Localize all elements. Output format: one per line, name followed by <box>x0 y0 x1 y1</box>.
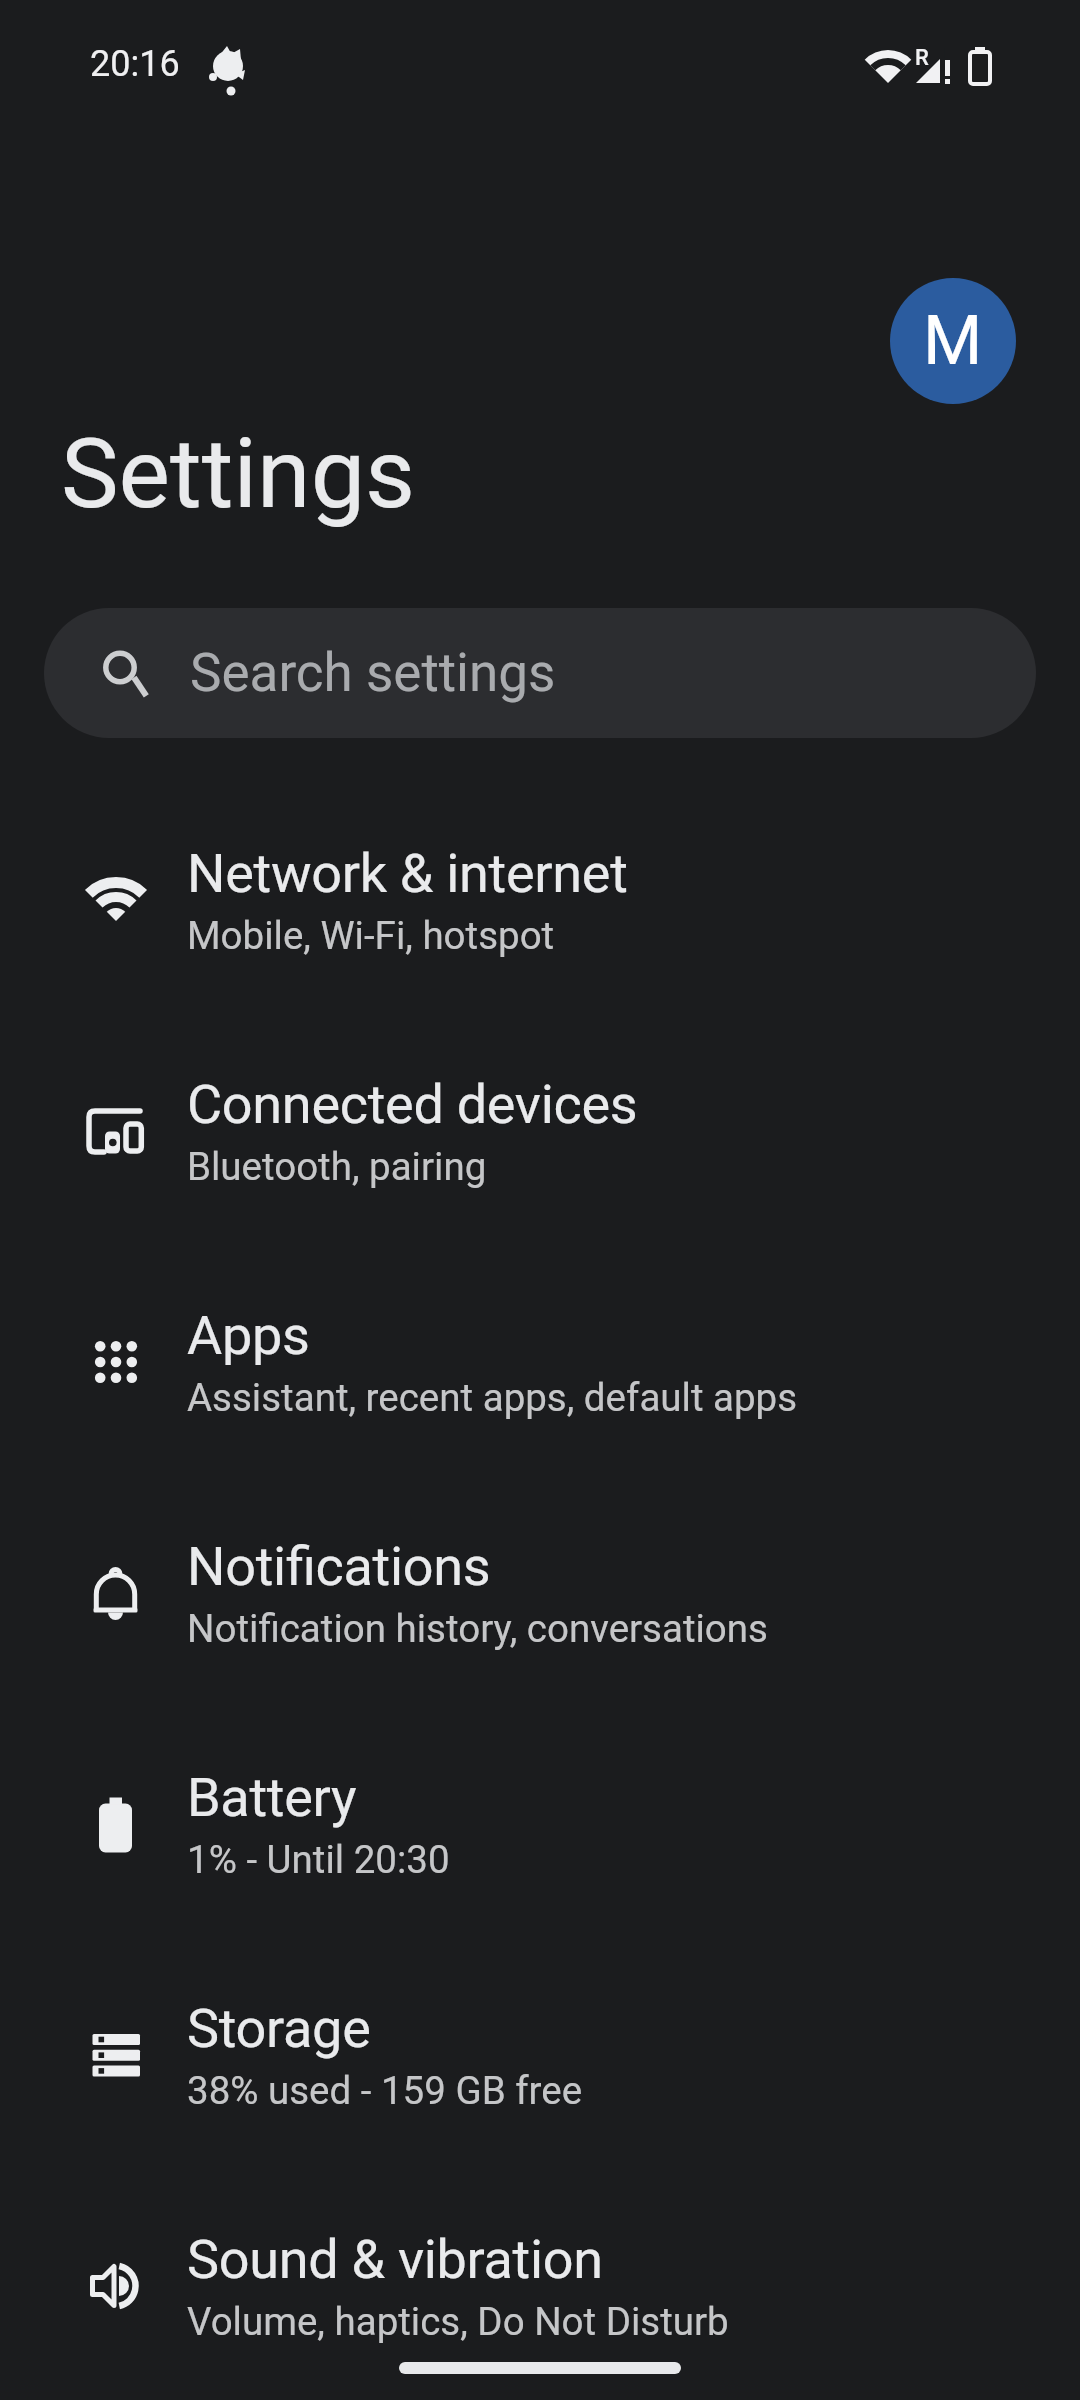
button[interactable]: Network & internet <box>0 784 1080 1015</box>
button[interactable]: M <box>890 278 1016 404</box>
staticText: M <box>923 301 983 381</box>
staticText: 38% used - 159 GB free <box>187 2068 583 2113</box>
staticText: Apps <box>187 1304 310 1367</box>
staticText: Assistant, recent apps, default apps <box>187 1375 798 1420</box>
button[interactable]: Connected devices <box>0 1015 1080 1246</box>
button[interactable]: Apps <box>0 1246 1080 1477</box>
staticText: Notifications <box>187 1535 491 1598</box>
button[interactable]: Battery <box>0 1708 1080 1939</box>
staticText: Storage <box>187 1997 371 2060</box>
staticText: Bluetooth, pairing <box>187 1144 487 1189</box>
button[interactable]: Sound & vibration <box>0 2170 1080 2400</box>
button[interactable]: Notifications <box>0 1477 1080 1708</box>
staticText: R <box>915 45 929 71</box>
staticText: Battery <box>187 1766 357 1829</box>
staticText: Connected devices <box>187 1073 638 1136</box>
staticText: Sound & vibration <box>187 2228 603 2291</box>
staticText: Notification history, conversations <box>187 1606 768 1651</box>
staticText: Search settings <box>190 642 556 704</box>
staticText: Settings <box>61 417 416 531</box>
staticText: 1% - Until 20:30 <box>187 1837 450 1882</box>
staticText: 20:16 <box>90 43 180 85</box>
staticText: Mobile, Wi-Fi, hotspot <box>187 913 555 958</box>
button[interactable]: Search settings <box>44 608 1036 738</box>
staticText: Network & internet <box>187 842 628 905</box>
button[interactable]: Storage <box>0 1939 1080 2170</box>
staticText: Volume, haptics, Do Not Disturb <box>187 2299 729 2344</box>
